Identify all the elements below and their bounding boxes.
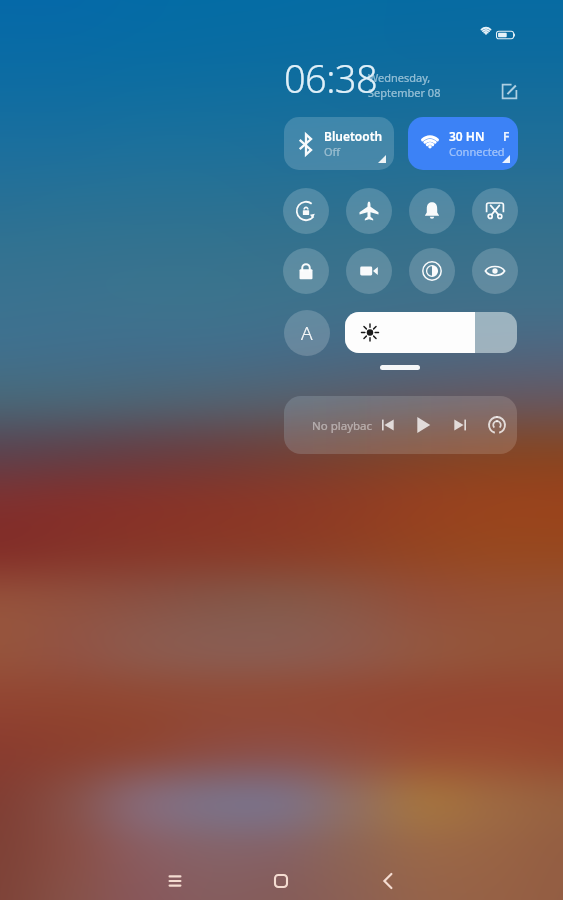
staticText: Bluetooth — [324, 128, 383, 144]
button[interactable]: Auto brightness — [284, 310, 330, 356]
button[interactable]: Dark mode — [409, 248, 455, 294]
button[interactable]: Edit — [492, 74, 527, 109]
staticText: A — [301, 320, 313, 346]
staticText: No playbac — [312, 418, 373, 434]
button[interactable]: Bluetooth — [284, 117, 394, 170]
button[interactable]: No playbac — [284, 396, 517, 454]
button[interactable]: Auto rotate — [283, 188, 329, 234]
staticText: Wednesday, — [368, 70, 431, 85]
button[interactable]: Reading mode — [472, 248, 518, 294]
button[interactable]: Recents — [153, 859, 197, 900]
button[interactable]: Brightness — [345, 312, 517, 353]
staticText: F — [503, 128, 510, 144]
staticText: Off — [324, 144, 341, 159]
button[interactable]: Do not disturb — [409, 188, 455, 234]
button[interactable]: Lock — [283, 248, 329, 294]
staticText: Connected — [449, 144, 505, 159]
button[interactable]: Airplane mode — [346, 188, 392, 234]
staticText: September 08 — [368, 85, 441, 100]
staticText: 06:38 — [284, 52, 378, 104]
button[interactable]: Screen record — [346, 248, 392, 294]
button[interactable]: Back — [366, 859, 410, 900]
button[interactable]: 30 HN — [408, 117, 518, 170]
button[interactable]: Screenshot — [472, 188, 518, 234]
staticText: 30 HN — [449, 128, 485, 144]
button[interactable]: Home — [259, 859, 303, 900]
